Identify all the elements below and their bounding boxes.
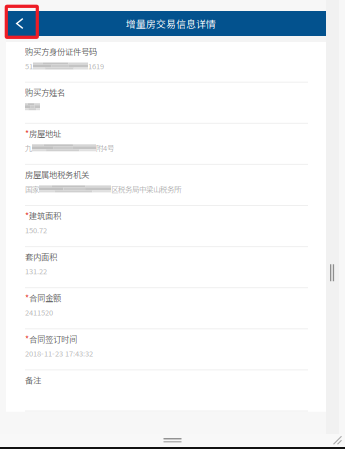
staticText: 房屋属地税务机关 [25, 168, 89, 180]
staticText: 备注 [25, 374, 41, 386]
staticText: 增量房交易信息详情 [126, 16, 216, 31]
staticText: 2411520 [25, 307, 53, 318]
staticText: * [25, 291, 29, 304]
button[interactable]: Back [6, 11, 35, 36]
staticText: 131.22 [25, 266, 47, 276]
staticText: 国家 [25, 183, 39, 194]
staticText: 套内面积 [25, 251, 57, 263]
staticText: 建筑面积 [29, 209, 61, 221]
staticText: 附4号 [96, 142, 114, 153]
staticText: 区税务局中梁山税务所 [111, 183, 181, 194]
staticText: 购买方姓名 [25, 86, 65, 98]
staticText: 1619 [88, 61, 104, 71]
staticText: * [25, 127, 29, 139]
staticText: 房屋地址 [29, 127, 61, 139]
staticText: 2018-11-23 17:43:32 [25, 348, 93, 359]
staticText: * [25, 209, 29, 222]
staticText: 51 [25, 61, 33, 71]
staticText: 九 [25, 142, 32, 153]
staticText: * [25, 332, 29, 345]
staticText: 150.72 [25, 225, 47, 235]
staticText: 合同签订时间 [29, 333, 77, 345]
staticText: 购买方身份证件号码 [25, 45, 97, 57]
staticText: 合同金额 [29, 292, 61, 304]
